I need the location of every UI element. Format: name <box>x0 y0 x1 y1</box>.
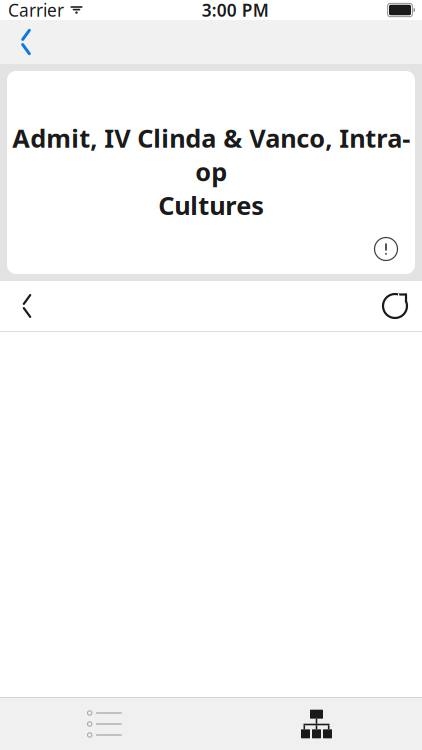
button[interactable]: Hierarchy <box>211 698 422 750</box>
button[interactable]: Back <box>0 281 54 331</box>
button[interactable]: Information <box>371 234 401 264</box>
staticText: 3:00 PM <box>202 0 269 21</box>
button[interactable]: Back <box>0 20 52 64</box>
staticText: Carrier <box>8 0 64 21</box>
button[interactable]: Reload <box>368 281 422 331</box>
staticText: Admit, IV Clinda & Vanco, Intra-op Cultu… <box>12 121 410 222</box>
button[interactable]: List <box>0 698 211 750</box>
